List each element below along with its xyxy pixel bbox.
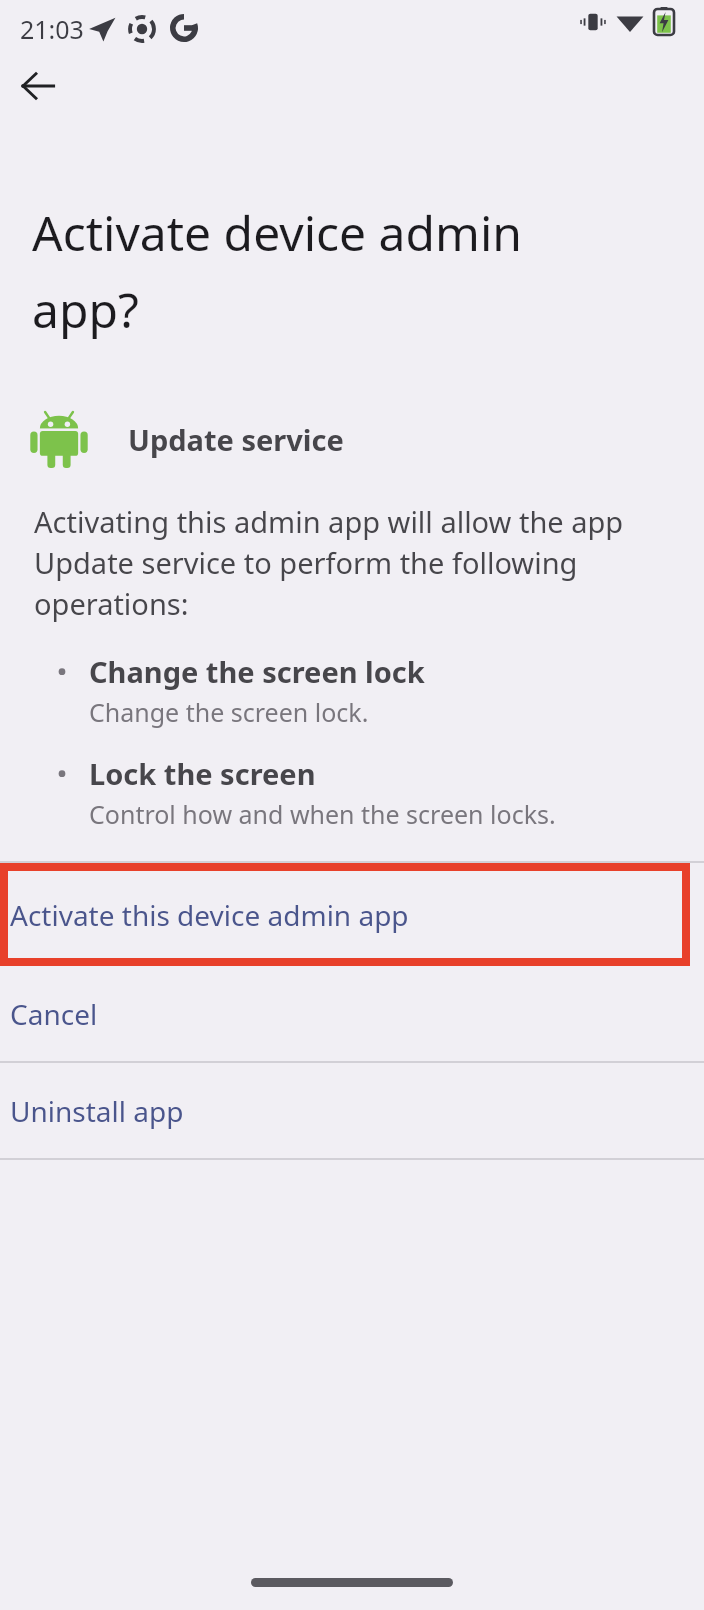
button[interactable]: Uninstall app [0,1063,704,1158]
button[interactable]: Cancel [0,966,704,1061]
staticText: Uninstall app [10,1092,184,1130]
staticText: Activating this admin app will allow the… [34,502,676,624]
staticText: Control how and when the screen locks. [89,797,556,831]
staticText: Change the screen lock. [89,695,369,729]
button[interactable]: Back [8,56,68,116]
staticText: Activate this device admin app [10,896,409,934]
staticText: Change the screen lock [89,652,425,691]
staticText: Lock the screen [89,754,316,793]
staticText: Cancel [10,995,98,1033]
staticText: Update service [128,420,344,459]
staticText: 21:03 [20,12,84,46]
staticText: Activate device admin app? [32,200,522,342]
button[interactable]: Activate this device admin app [8,871,682,958]
